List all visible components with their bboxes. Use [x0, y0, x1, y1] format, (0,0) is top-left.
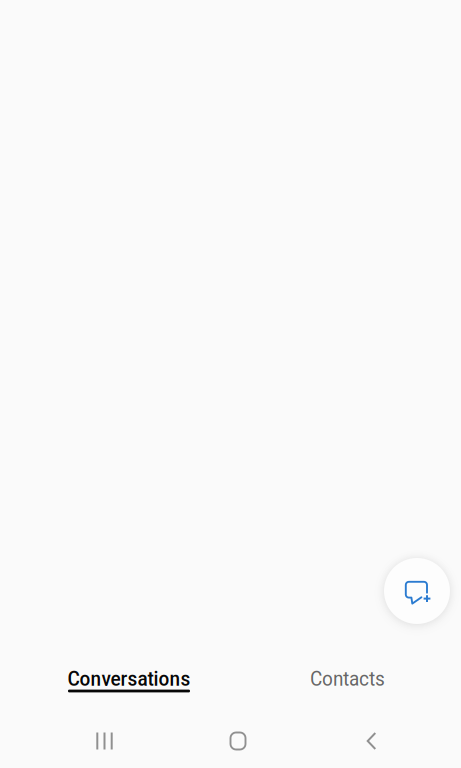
staticText: Contacts — [310, 667, 385, 691]
button[interactable]: Contacts — [230, 651, 461, 705]
button[interactable]: Conversations — [0, 651, 230, 705]
staticText: Conversations — [67, 667, 190, 691]
button[interactable]: Recent apps — [72, 720, 136, 762]
button[interactable]: Back — [339, 720, 403, 762]
button[interactable]: Home — [206, 720, 270, 762]
button[interactable]: New conversation — [384, 558, 450, 624]
